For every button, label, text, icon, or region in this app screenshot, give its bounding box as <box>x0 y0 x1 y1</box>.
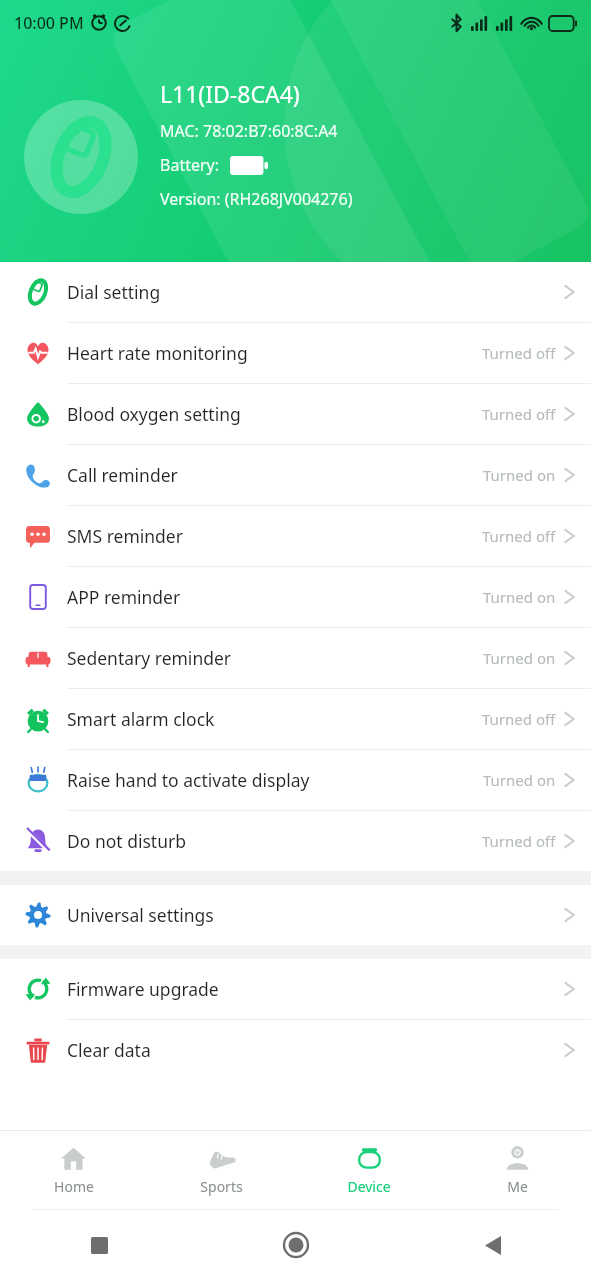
button[interactable]: Heart rate monitoring <box>0 323 591 383</box>
staticText: Turned off <box>482 343 556 363</box>
button[interactable]: Me <box>443 1131 591 1209</box>
staticText: Sports <box>200 1177 243 1196</box>
staticText: Firmware upgrade <box>67 977 219 1001</box>
staticText: Version: (RH268JV004276) <box>160 188 353 210</box>
button[interactable]: Back <box>474 1226 512 1264</box>
staticText: Clear data <box>67 1038 151 1062</box>
staticText: Turned off <box>482 404 556 424</box>
button[interactable]: Home <box>0 1131 147 1209</box>
button[interactable]: APP reminder <box>0 567 591 627</box>
staticText: Battery: <box>160 154 220 176</box>
button[interactable]: Universal settings <box>0 885 591 945</box>
button[interactable]: Blood oxygen setting <box>0 384 591 444</box>
button[interactable]: Smart alarm clock <box>0 689 591 749</box>
staticText: Turned on <box>483 770 556 790</box>
staticText: Turned on <box>483 465 556 485</box>
button[interactable]: SMS reminder <box>0 506 591 566</box>
staticText: Turned off <box>482 526 556 546</box>
staticText: Turned on <box>483 648 556 668</box>
staticText: Raise hand to activate display <box>67 768 310 792</box>
staticText: Turned on <box>483 587 556 607</box>
button[interactable]: Sedentary reminder <box>0 628 591 688</box>
staticText: L11(ID-8CA4) <box>160 78 300 109</box>
button[interactable]: Sports <box>147 1131 295 1209</box>
button[interactable]: Do not disturb <box>0 811 591 871</box>
staticText: 10:00 PM <box>14 12 84 34</box>
staticText: Dial setting <box>67 280 161 304</box>
staticText: Home <box>54 1177 94 1196</box>
staticText: MAC: 78:02:B7:60:8C:A4 <box>160 120 338 142</box>
staticText: Smart alarm clock <box>67 707 215 731</box>
button[interactable]: Dial setting <box>0 262 591 322</box>
button[interactable]: Clear data <box>0 1020 591 1080</box>
staticText: Do not disturb <box>67 829 186 853</box>
staticText: Heart rate monitoring <box>67 341 248 365</box>
button[interactable]: Call reminder <box>0 445 591 505</box>
staticText: Call reminder <box>67 463 178 487</box>
staticText: Turned off <box>482 831 556 851</box>
staticText: SMS reminder <box>67 524 183 548</box>
button[interactable]: Home <box>275 1224 317 1266</box>
button[interactable]: Recent apps <box>80 1226 118 1264</box>
staticText: Sedentary reminder <box>67 646 232 670</box>
button[interactable]: Firmware upgrade <box>0 959 591 1019</box>
button[interactable]: Device <box>295 1131 443 1209</box>
button[interactable]: Raise hand to activate display <box>0 750 591 810</box>
staticText: Device <box>347 1177 391 1196</box>
staticText: APP reminder <box>67 585 181 609</box>
staticText: Turned off <box>482 709 556 729</box>
staticText: Blood oxygen setting <box>67 402 241 426</box>
staticText: Me <box>507 1177 528 1196</box>
staticText: Universal settings <box>67 903 214 927</box>
